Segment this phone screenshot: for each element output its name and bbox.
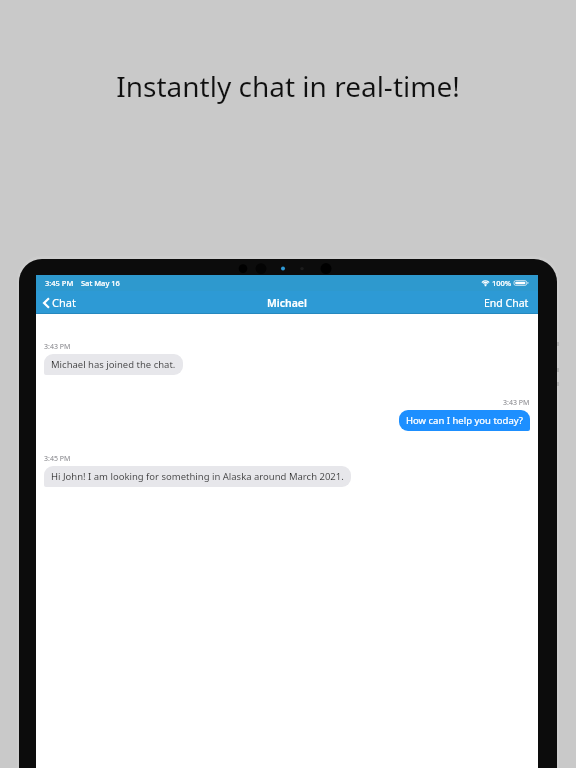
button[interactable]: Chat (36, 291, 84, 314)
staticText: Chat (52, 295, 76, 310)
other: Wi-Fi signal (481, 279, 490, 287)
staticText: 3:45 PM (45, 278, 74, 288)
staticText: 3:43 PM (44, 342, 71, 352)
staticText: End Chat (484, 296, 529, 310)
other: Battery full (514, 279, 529, 287)
staticText: 3:45 PM (44, 454, 71, 464)
button[interactable]: Hi John! I am looking for something in A… (44, 466, 351, 487)
staticText: 100% (492, 278, 512, 288)
staticText: Instantly chat in real-time! (0, 67, 576, 105)
button[interactable]: End Chat (475, 291, 538, 314)
button[interactable]: How can I help you today? (399, 410, 530, 431)
button[interactable]: Michael has joined the chat. (44, 354, 183, 375)
staticText: Sat May 16 (81, 278, 120, 288)
staticText: How can I help you today? (406, 414, 523, 427)
staticText: 3:43 PM (503, 398, 530, 408)
staticText: Michael (267, 296, 307, 310)
staticText: Hi John! I am looking for something in A… (51, 470, 344, 483)
staticText: Michael has joined the chat. (51, 358, 176, 371)
